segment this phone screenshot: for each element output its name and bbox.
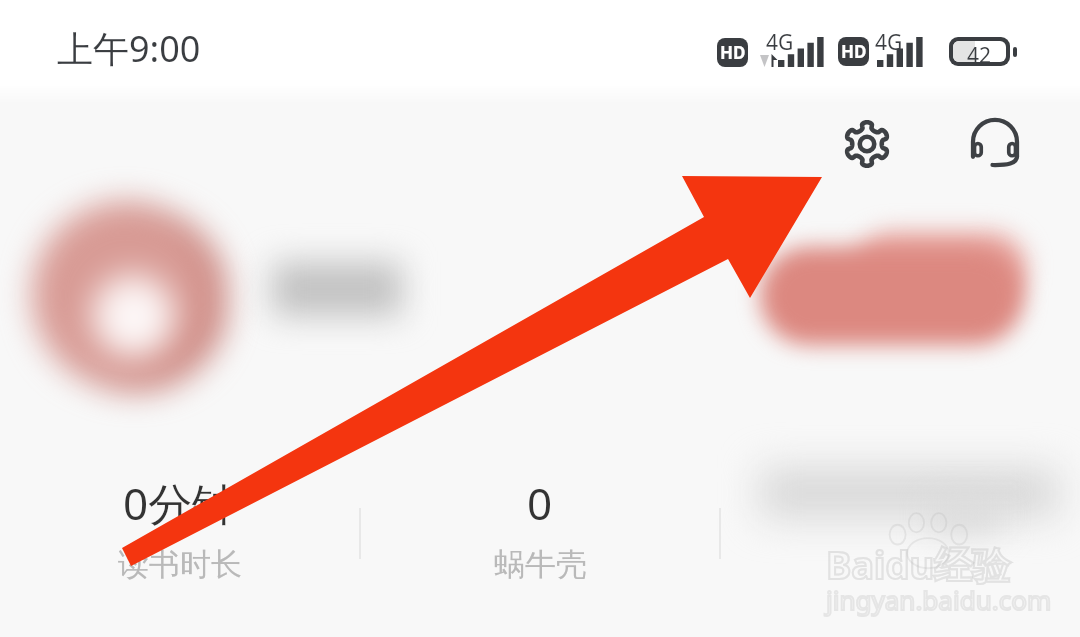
- button[interactable]: Membership action: [760, 247, 1024, 345]
- staticText: 蜗牛壳: [494, 545, 587, 584]
- button[interactable]: 0分钟: [0, 452, 360, 622]
- button[interactable]: Customer service: [965, 114, 1025, 174]
- staticText: Baidu经验: [826, 538, 1011, 590]
- staticText: HD: [841, 40, 867, 63]
- staticText: 4G: [766, 28, 794, 57]
- staticText: jingyan.baidu.com: [826, 582, 1052, 617]
- staticText: HD: [720, 41, 746, 64]
- button[interactable]: User name: [272, 262, 402, 316]
- button[interactable]: Settings: [837, 114, 897, 174]
- button[interactable]: 0: [360, 452, 720, 622]
- staticText: 读书时长: [118, 545, 242, 584]
- staticText: 42: [967, 41, 992, 62]
- staticText: 4G: [875, 28, 903, 57]
- button[interactable]: Profile photo: [24, 194, 226, 396]
- staticText: 0分钟: [123, 473, 237, 533]
- staticText: 0: [527, 473, 553, 533]
- staticText: 上午9:00: [57, 24, 201, 73]
